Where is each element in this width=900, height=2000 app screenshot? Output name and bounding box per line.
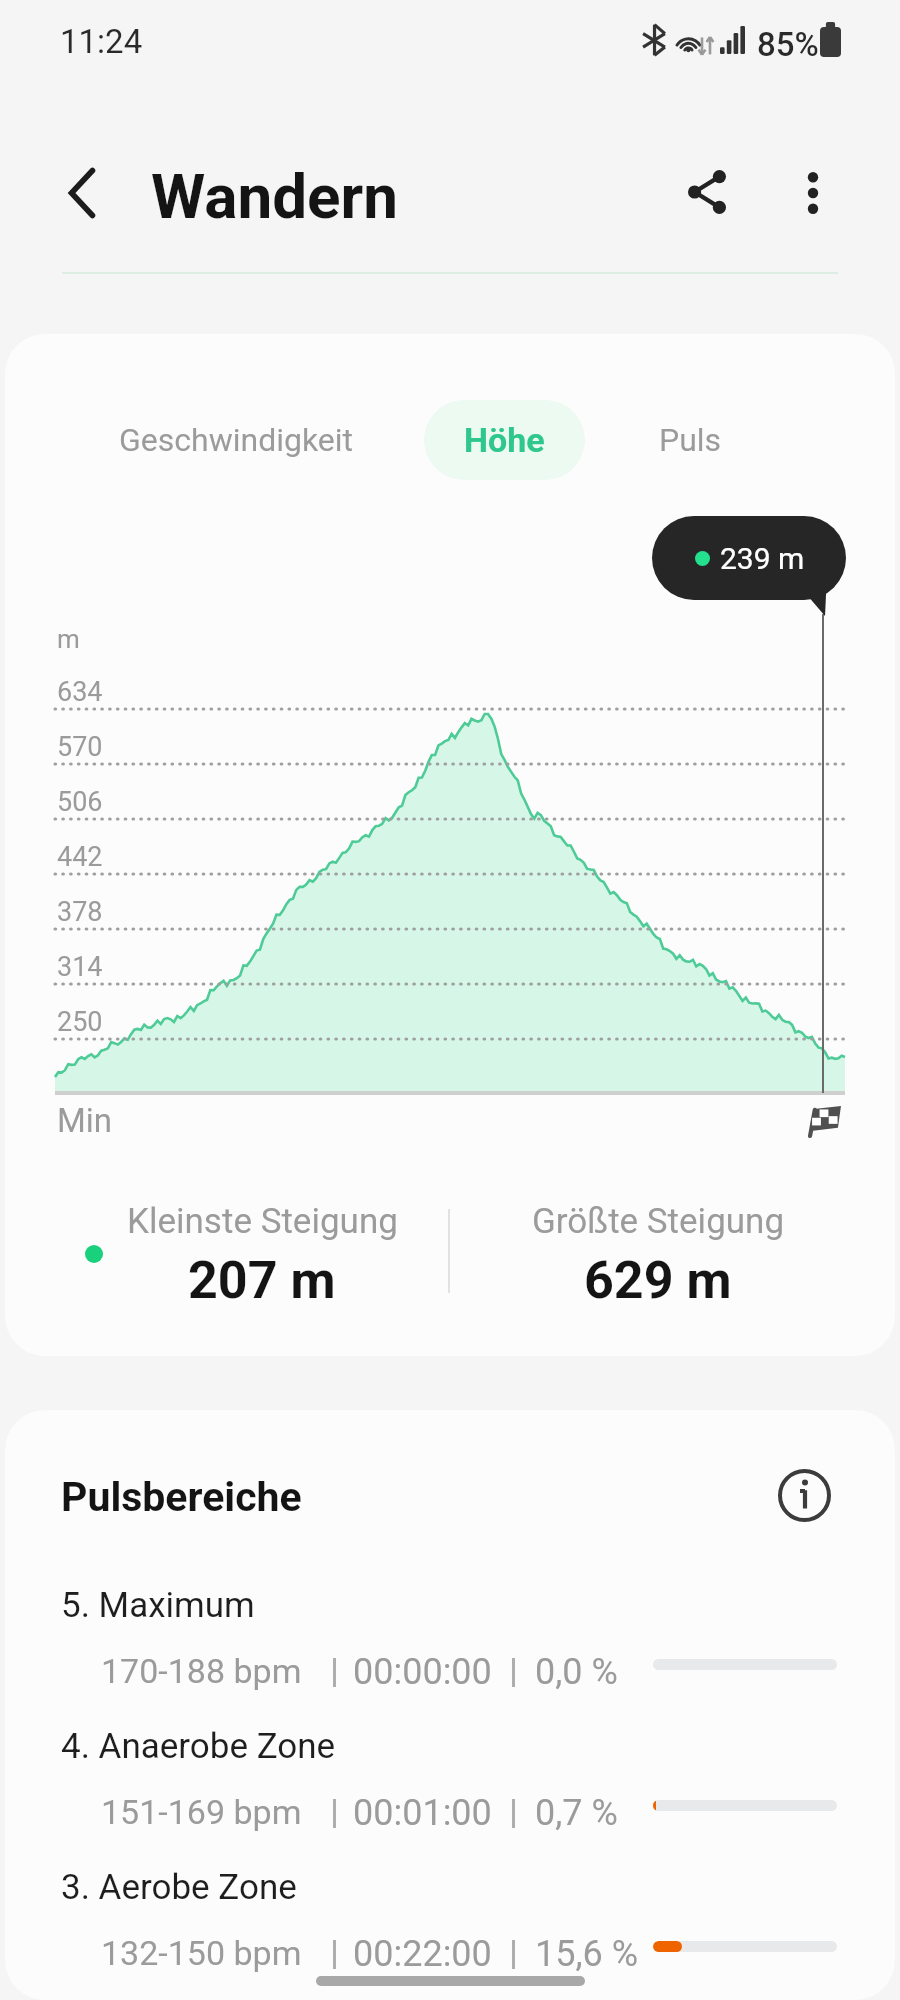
button[interactable]: Geschwindigkeit <box>80 400 392 480</box>
staticText: 00:22:00 <box>353 1933 492 1975</box>
staticText: Kleinste Steigung <box>127 1201 398 1242</box>
button[interactable]: Puls <box>619 400 762 480</box>
staticText: Größte Steigung <box>532 1201 785 1242</box>
staticText: Puls <box>659 421 722 459</box>
staticText: 151-169 bpm <box>101 1792 302 1832</box>
staticText: 15,6 % <box>535 1933 639 1975</box>
staticText: Min <box>57 1101 113 1140</box>
staticText: 0,0 % <box>535 1651 618 1693</box>
staticText: 11:24 <box>60 22 143 61</box>
button[interactable]: More options <box>763 143 863 243</box>
staticText: Geschwindigkeit <box>119 421 354 459</box>
staticText: 207 m <box>188 1250 336 1311</box>
staticText: 634 <box>57 676 103 708</box>
staticText: 442 <box>57 841 103 873</box>
staticText: 170-188 bpm <box>101 1651 302 1691</box>
button[interactable]: Höhe <box>424 400 585 480</box>
staticText: 506 <box>57 786 103 818</box>
button[interactable]: Info <box>769 1460 840 1531</box>
staticText: 4. Anaerobe Zone <box>61 1726 336 1767</box>
button[interactable]: Back <box>32 143 132 243</box>
staticText: 132-150 bpm <box>101 1933 302 1973</box>
staticText: 629 m <box>584 1250 732 1311</box>
staticText: 314 <box>57 951 103 983</box>
staticText: 85% <box>757 25 819 64</box>
staticText: m <box>57 624 80 654</box>
staticText: 5. Maximum <box>61 1585 255 1626</box>
staticText: 570 <box>57 731 103 763</box>
staticText: Pulsbereiche <box>61 1473 302 1521</box>
staticText: 3. Aerobe Zone <box>61 1867 297 1908</box>
staticText: 239 m <box>720 541 805 576</box>
staticText: 378 <box>57 896 103 928</box>
staticText: 0,7 % <box>535 1792 618 1834</box>
staticText: 00:00:00 <box>353 1651 492 1693</box>
staticText: Höhe <box>464 420 545 460</box>
staticText: Wandern <box>151 160 399 233</box>
staticText: 00:01:00 <box>353 1792 492 1834</box>
button[interactable]: Share <box>657 142 757 242</box>
staticText: 250 <box>57 1006 103 1038</box>
